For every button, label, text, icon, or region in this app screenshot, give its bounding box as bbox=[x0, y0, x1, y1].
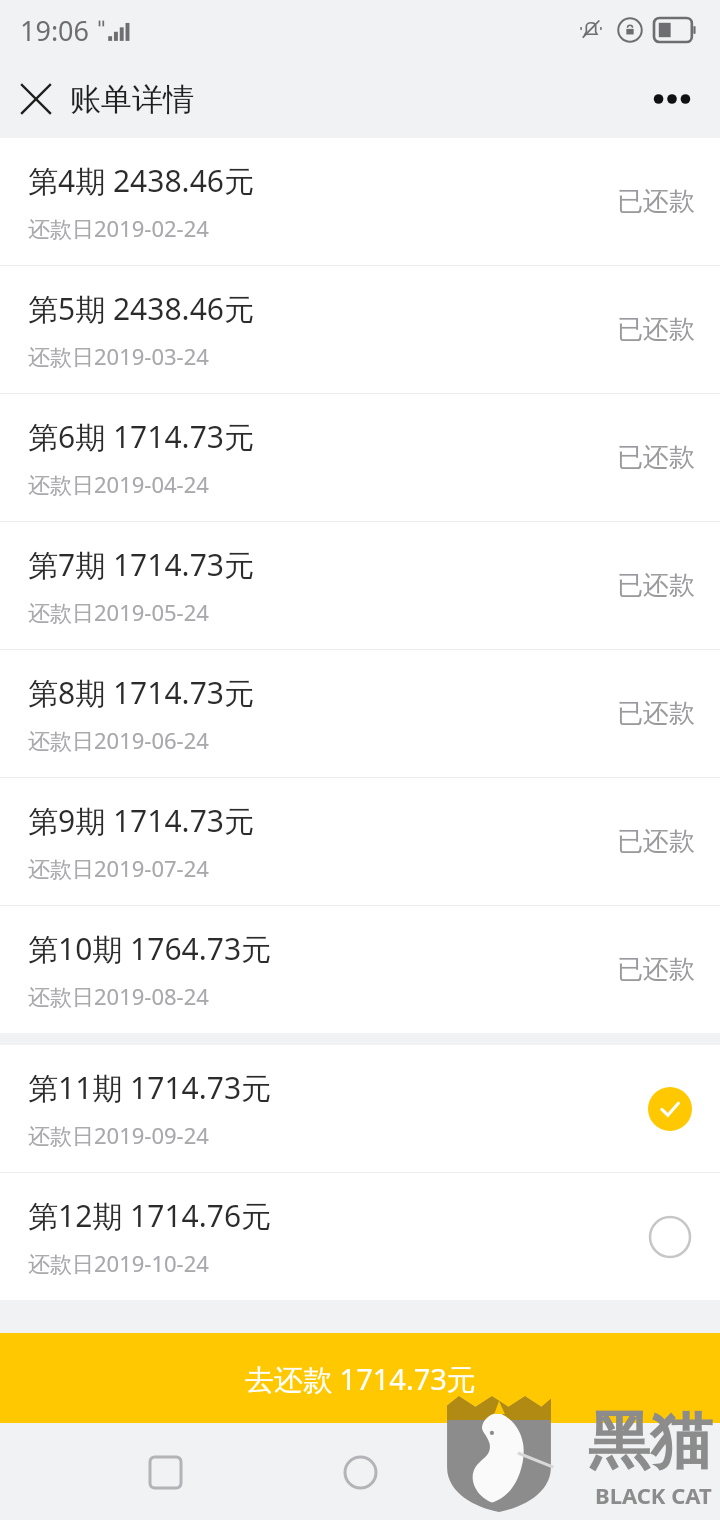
staticText: 还款日2019-06-24 bbox=[28, 725, 209, 755]
staticText: 第10期 1764.73元 bbox=[28, 928, 272, 969]
staticText: 还款日2019-10-24 bbox=[28, 1248, 209, 1278]
button[interactable]: Home bbox=[326, 1438, 394, 1506]
staticText: 还款日2019-09-24 bbox=[28, 1120, 209, 1150]
staticText: 还款日2019-03-24 bbox=[28, 341, 209, 371]
staticText: 第8期 1714.73元 bbox=[28, 672, 254, 713]
button[interactable]: 第9期 1714.73元 bbox=[0, 778, 720, 905]
staticText: 还款日2019-08-24 bbox=[28, 981, 209, 1011]
staticText: 账单详情 bbox=[70, 80, 194, 119]
staticText: 已还款 bbox=[617, 953, 695, 986]
button[interactable]: More options bbox=[644, 71, 700, 127]
staticText: BLACK CAT bbox=[595, 1480, 712, 1510]
staticText: 第4期 2438.46元 bbox=[28, 160, 254, 201]
staticText: 去还款 1714.73元 bbox=[245, 1359, 476, 1399]
staticText: 还款日2019-05-24 bbox=[28, 597, 209, 627]
staticText: 还款日2019-02-24 bbox=[28, 213, 209, 243]
staticText: 还款日2019-04-24 bbox=[28, 469, 209, 499]
button[interactable]: Selected bbox=[648, 1087, 692, 1131]
button[interactable]: 第8期 1714.73元 bbox=[0, 650, 720, 777]
button[interactable]: 第7期 1714.73元 bbox=[0, 522, 720, 649]
staticText: 第12期 1714.76元 bbox=[28, 1195, 272, 1236]
staticText: 已还款 bbox=[617, 185, 695, 218]
button[interactable]: 第6期 1714.73元 bbox=[0, 394, 720, 521]
button[interactable]: 第5期 2438.46元 bbox=[0, 266, 720, 393]
staticText: 第5期 2438.46元 bbox=[28, 288, 254, 329]
staticText: 黑猫 bbox=[588, 1402, 712, 1480]
staticText: 已还款 bbox=[617, 825, 695, 858]
staticText: 还款日2019-07-24 bbox=[28, 853, 209, 883]
staticText: 19:06 bbox=[20, 12, 90, 49]
button[interactable]: 第11期 1714.73元 bbox=[0, 1045, 720, 1172]
staticText: 已还款 bbox=[617, 569, 695, 602]
staticText: 第7期 1714.73元 bbox=[28, 544, 254, 585]
button[interactable]: 第12期 1714.76元 bbox=[0, 1173, 720, 1300]
staticText: 已还款 bbox=[617, 313, 695, 346]
staticText: 第6期 1714.73元 bbox=[28, 416, 254, 457]
button[interactable]: 去还款 1714.73元 bbox=[0, 1333, 720, 1424]
staticText: 第11期 1714.73元 bbox=[28, 1067, 272, 1108]
button[interactable]: 第10期 1764.73元 bbox=[0, 906, 720, 1033]
button[interactable]: Recent apps bbox=[131, 1438, 199, 1506]
staticText: 已还款 bbox=[617, 697, 695, 730]
staticText: 已还款 bbox=[617, 441, 695, 474]
button[interactable]: Close bbox=[10, 73, 62, 125]
staticText: 第9期 1714.73元 bbox=[28, 800, 254, 841]
button[interactable]: 第4期 2438.46元 bbox=[0, 138, 720, 265]
button[interactable]: Select bbox=[648, 1215, 692, 1259]
